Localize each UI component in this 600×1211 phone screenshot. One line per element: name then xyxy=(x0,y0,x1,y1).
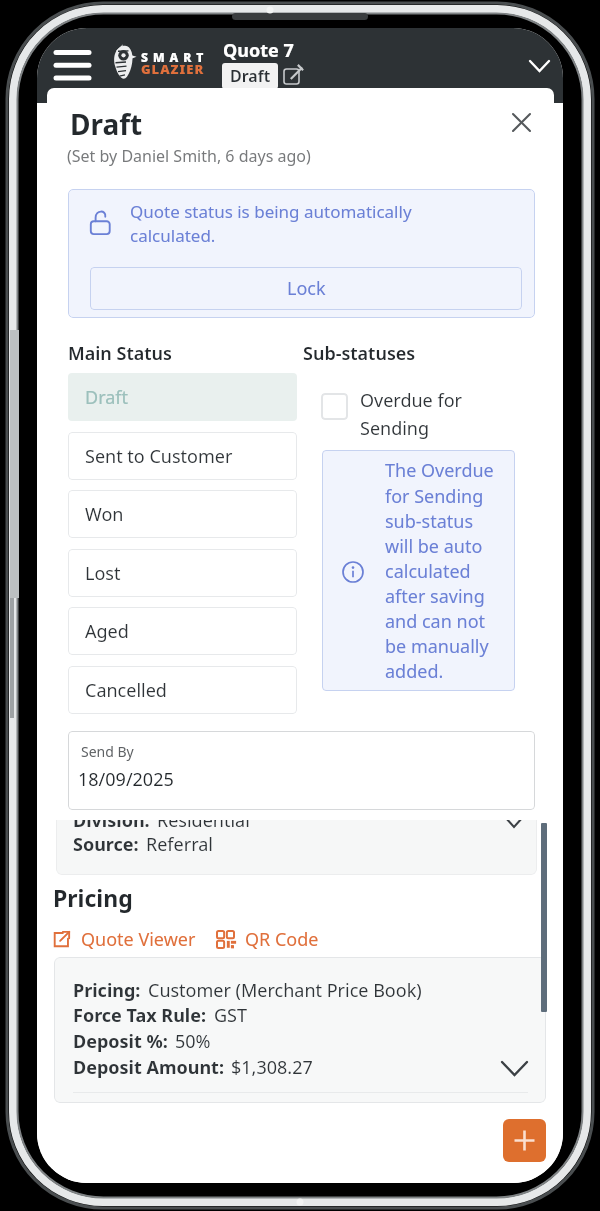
button[interactable]: Draft xyxy=(68,373,297,421)
button[interactable]: Edit status xyxy=(282,64,304,86)
staticText: Won xyxy=(85,502,124,527)
staticText: Draft xyxy=(70,105,143,143)
staticText: Deposit %: xyxy=(73,1029,168,1054)
staticText: Customer (Merchant Price Book) xyxy=(148,978,422,1003)
staticText: Cancelled xyxy=(85,678,167,703)
button[interactable]: QR Code xyxy=(213,923,325,956)
button[interactable]: Sent to Customer xyxy=(68,432,297,480)
button[interactable]: Lost xyxy=(68,549,297,597)
button[interactable]: Expand header xyxy=(519,50,559,81)
staticText: Lock xyxy=(287,276,326,301)
staticText: Source: xyxy=(73,832,139,857)
staticText: Overdue for Sending xyxy=(360,388,472,440)
staticText: Sub-statuses xyxy=(303,341,416,366)
staticText: $1,308.27 xyxy=(231,1055,313,1080)
staticText: Quote status is being automatically calc… xyxy=(130,200,432,247)
staticText: Residential xyxy=(157,808,250,833)
staticText: Sent to Customer xyxy=(85,444,233,469)
staticText: Draft xyxy=(230,65,271,87)
staticText: Aged xyxy=(85,619,129,644)
staticText: Pricing: xyxy=(73,978,141,1003)
staticText: Force Tax Rule: xyxy=(73,1003,207,1028)
button[interactable]: Lock xyxy=(90,267,522,310)
staticText: Main Status xyxy=(68,341,172,366)
button[interactable]: Add xyxy=(503,1119,546,1162)
button[interactable]: Overdue for Sending xyxy=(318,390,533,448)
button[interactable]: Quote Viewer xyxy=(49,923,202,956)
button[interactable]: Aged xyxy=(68,607,297,655)
button[interactable]: Draft xyxy=(222,63,278,89)
staticText: Draft xyxy=(85,385,129,410)
staticText: Pricing xyxy=(53,882,133,913)
staticText: Division: xyxy=(73,808,150,833)
button[interactable]: Won xyxy=(68,490,297,538)
staticText: (Set by Daniel Smith, 6 days ago) xyxy=(67,145,311,167)
staticText: The Overdue for Sending sub-status will … xyxy=(385,458,503,683)
staticText: Deposit Amount: xyxy=(73,1055,224,1080)
staticText: GLAZIER xyxy=(141,60,205,78)
staticText: GST xyxy=(214,1003,247,1028)
staticText: Referral xyxy=(146,832,213,857)
staticText: Send By xyxy=(81,742,134,761)
staticText: 18/09/2025 xyxy=(78,767,174,792)
staticText: Quote 7 xyxy=(223,38,294,63)
button[interactable]: Send By xyxy=(68,731,535,810)
staticText: QR Code xyxy=(245,927,319,952)
button[interactable]: Cancelled xyxy=(68,666,297,714)
staticText: Quote Viewer xyxy=(81,927,196,952)
button[interactable]: Close xyxy=(504,105,538,139)
button[interactable]: Expand pricing xyxy=(499,1053,529,1083)
staticText: 50% xyxy=(175,1029,211,1054)
staticText: Lost xyxy=(85,561,121,586)
button[interactable]: Menu xyxy=(49,42,95,88)
staticText: SMART xyxy=(141,49,209,65)
